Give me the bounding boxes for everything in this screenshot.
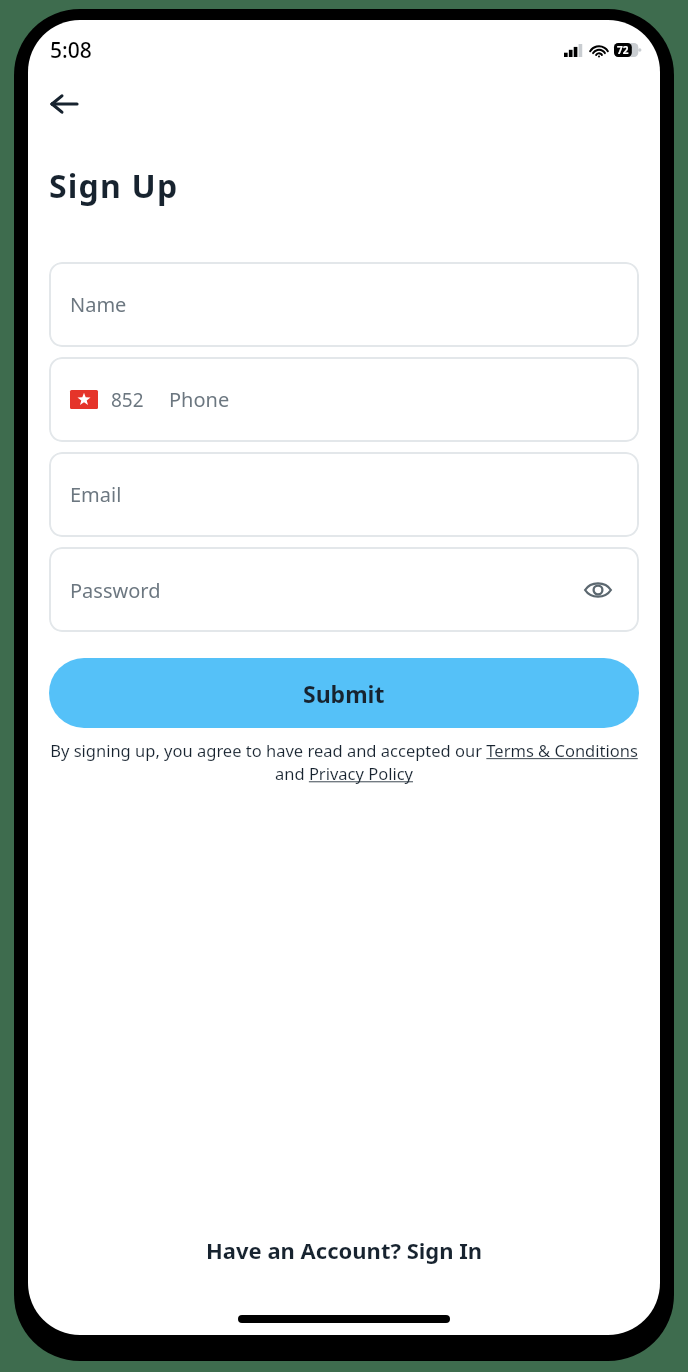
- staticText: Sign Up: [49, 164, 179, 208]
- button[interactable]: Password: [49, 547, 639, 632]
- staticText: Have an Account? Sign In: [206, 1235, 483, 1265]
- button[interactable]: 852: [49, 357, 639, 442]
- staticText: Phone: [169, 386, 230, 413]
- staticText: Submit: [303, 678, 385, 709]
- staticText: 852: [111, 387, 144, 413]
- button[interactable]: Back: [38, 78, 90, 130]
- staticText: 72: [617, 43, 629, 57]
- staticText: 5:08: [50, 36, 92, 65]
- button[interactable]: Submit: [49, 658, 639, 728]
- button[interactable]: Name: [49, 262, 639, 347]
- button[interactable]: Have an Account? Sign In: [28, 1225, 660, 1275]
- button[interactable]: By signing up, you agree to have read an…: [49, 739, 639, 785]
- staticText: Name: [70, 291, 127, 318]
- staticText: Email: [70, 481, 122, 508]
- button[interactable]: Show password: [578, 570, 618, 610]
- staticText: Password: [70, 577, 161, 604]
- staticText: By signing up, you agree to have read an…: [49, 739, 639, 785]
- button[interactable]: Email: [49, 452, 639, 537]
